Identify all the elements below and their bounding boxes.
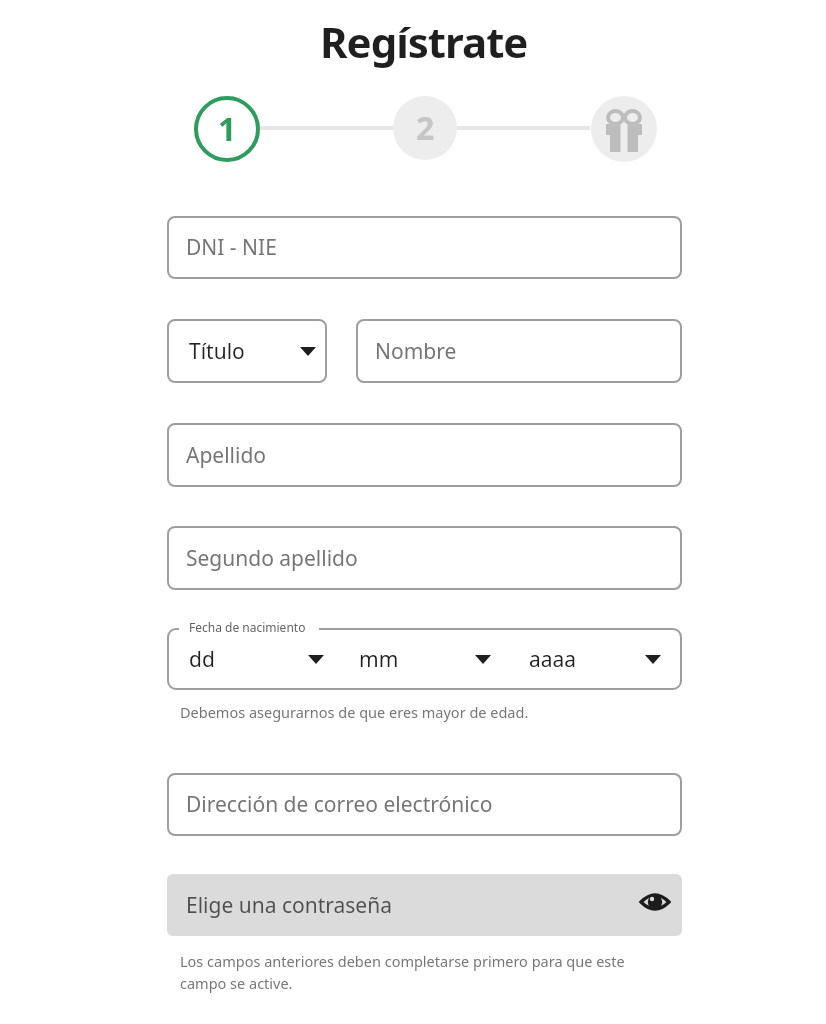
- staticText: Elige una contraseña: [186, 891, 392, 920]
- button[interactable]: dd: [167, 628, 682, 690]
- staticText: Dirección de correo electrónico: [186, 790, 493, 819]
- staticText: Debemos asegurarnos de que eres mayor de…: [180, 702, 529, 722]
- button[interactable]: Dirección de correo electrónico: [167, 773, 682, 836]
- staticText: Los campos anteriores deben completarse …: [180, 951, 625, 971]
- staticText: dd: [189, 645, 215, 674]
- staticText: Regístrate: [320, 13, 528, 70]
- staticText: 2: [416, 106, 435, 150]
- staticText: Apellido: [186, 441, 267, 470]
- staticText: mm: [359, 645, 399, 674]
- staticText: Nombre: [375, 337, 457, 366]
- button[interactable]: Segundo apellido: [167, 526, 682, 590]
- staticText: Título: [189, 337, 245, 366]
- button[interactable]: Apellido: [167, 423, 682, 487]
- button[interactable]: 2: [394, 97, 456, 159]
- staticText: Fecha de nacimiento: [189, 619, 306, 635]
- staticText: campo se active.: [180, 973, 293, 993]
- staticText: Segundo apellido: [186, 544, 358, 573]
- staticText: 1: [218, 107, 237, 151]
- button[interactable]: 1: [196, 98, 258, 160]
- button[interactable]: Elige una contraseña: [167, 874, 682, 936]
- button[interactable]: DNI - NIE: [167, 216, 682, 279]
- button[interactable]: Nombre: [356, 319, 682, 383]
- button[interactable]: Título: [167, 319, 327, 383]
- staticText: aaaa: [529, 645, 577, 674]
- staticText: DNI - NIE: [186, 233, 277, 262]
